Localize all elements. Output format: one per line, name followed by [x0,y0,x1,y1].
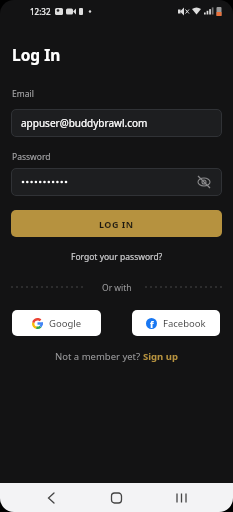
button[interactable]: appuser@buddybrawl.com [11,109,222,137]
staticText: Password [12,151,51,163]
button[interactable]: Google [12,310,101,336]
staticText: 12:32 [30,6,51,17]
button[interactable]: f [132,310,220,336]
staticText: LOG IN [99,218,134,230]
staticText: Or with [102,282,132,294]
button[interactable]: Not a member yet? [0,350,233,363]
staticText: Not a member yet? [55,350,143,363]
staticText: f [150,318,154,329]
button[interactable] [11,168,222,196]
button[interactable] [0,483,77,512]
staticText: Log In [12,44,61,65]
staticText: Facebook [163,317,206,330]
button[interactable]: LOG IN [11,210,222,237]
staticText: Forgot your password? [71,251,163,263]
staticText: appuser@buddybrawl.com [21,116,148,130]
button[interactable]: Forgot your password? [0,251,233,263]
staticText: Google [49,317,82,330]
button[interactable] [155,483,233,512]
button[interactable] [77,483,155,512]
staticText: Sign up [143,350,178,363]
staticText: Email [12,88,34,100]
